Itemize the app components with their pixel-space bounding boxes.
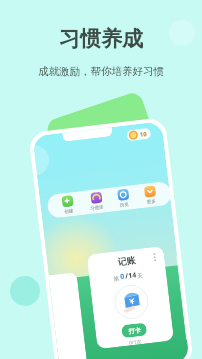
staticText: 历史 <box>120 202 129 209</box>
button[interactable]: 打卡 <box>121 322 147 338</box>
staticText: 更多 <box>146 198 156 205</box>
staticText: 10 <box>139 130 147 139</box>
staticText: 成就激励，帮你培养好习惯 <box>38 65 164 78</box>
staticText: 天 <box>137 272 144 280</box>
button[interactable]: 创建 <box>60 195 76 215</box>
button[interactable]: 更多 <box>143 185 158 206</box>
staticText: 0 <box>120 272 126 282</box>
staticText: 第 <box>113 275 120 283</box>
button[interactable]: 历史 <box>116 188 131 209</box>
staticText: 打卡 <box>128 326 141 335</box>
staticText: 0/1次 <box>129 338 142 345</box>
staticText: 记账 <box>117 254 136 267</box>
other: More options <box>153 253 157 262</box>
staticText: 习惯养成 <box>59 26 143 52</box>
button[interactable]: More options <box>86 246 174 349</box>
button[interactable]: Coins <box>128 129 147 140</box>
staticText: 创建 <box>64 208 74 215</box>
staticText: 习惯库 <box>90 204 104 212</box>
staticText: /14 <box>125 270 137 281</box>
other: Coins <box>128 130 138 140</box>
button[interactable]: 习惯库 <box>87 191 105 212</box>
